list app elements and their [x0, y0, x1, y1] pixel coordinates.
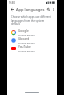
button[interactable]: Search [45, 6, 51, 12]
staticText: System default [18, 41, 35, 44]
button[interactable]: YouTube [7, 44, 57, 52]
button[interactable]: More options [51, 7, 55, 12]
button[interactable]: Google [7, 28, 57, 36]
staticText: Choose which apps use different language… [11, 15, 53, 25]
staticText: App languages [16, 7, 45, 12]
staticText: Google [18, 29, 29, 33]
staticText: System default [18, 49, 35, 52]
button[interactable]: Back [9, 6, 15, 12]
staticText: 9:30 [9, 1, 15, 5]
staticText: Gboard [18, 37, 30, 41]
staticText: System default [18, 33, 35, 36]
button[interactable]: Gboard [7, 36, 57, 44]
staticText: YouTube [18, 45, 31, 49]
